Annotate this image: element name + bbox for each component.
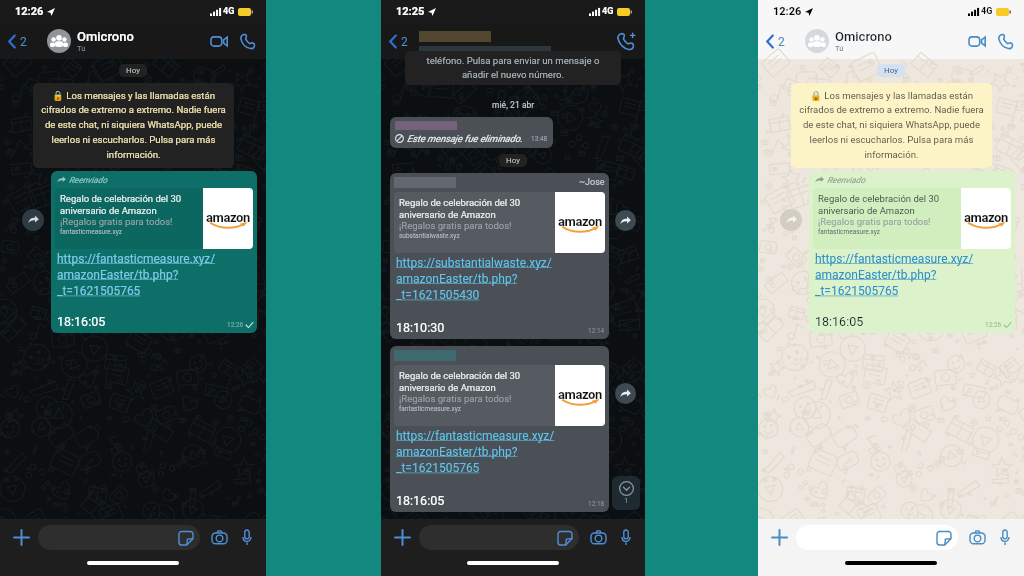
staticText: Tú xyxy=(77,44,86,53)
staticText: 18:10:30 xyxy=(396,320,445,335)
staticText: Omicrono xyxy=(835,29,892,44)
button[interactable]: Back xyxy=(385,34,411,49)
staticText: fantasticmeasure.xyz xyxy=(399,405,461,413)
staticText: 1 xyxy=(624,496,629,505)
staticText: Reenviado xyxy=(827,175,866,185)
button[interactable]: Reenviado xyxy=(51,171,257,333)
staticText: 13:48 xyxy=(531,135,548,143)
staticText: https://fantasticmeasure.xyz/ amazonEast… xyxy=(396,429,555,475)
button[interactable]: Voice message xyxy=(615,526,637,548)
staticText: 12:14 xyxy=(588,327,605,335)
button[interactable]: Message xyxy=(38,525,200,550)
staticText: amazon xyxy=(558,214,602,229)
staticText: 18:16:05 xyxy=(396,493,445,508)
staticText: Regalo de celebración del 30 aniversario… xyxy=(818,193,940,216)
staticText: ¡Regalos gratis para todos! xyxy=(399,220,512,231)
staticText: mié, 21 abr xyxy=(492,100,535,110)
staticText: Regalo de celebración del 30 aniversario… xyxy=(399,370,521,393)
button[interactable]: Attach xyxy=(389,524,415,550)
button[interactable]: Message xyxy=(796,525,958,550)
button[interactable]: Back xyxy=(4,34,30,49)
staticText: https://fantasticmeasure.xyz/ amazonEast… xyxy=(815,252,974,298)
button[interactable]: ~Jose xyxy=(390,173,609,339)
button[interactable]: Message xyxy=(419,525,579,550)
button[interactable]: Scroll to bottom xyxy=(612,476,640,510)
button[interactable]: Forward xyxy=(615,210,636,231)
staticText: 2 xyxy=(778,35,785,49)
staticText: 🔒 Los mensajes y las llamadas están cifr… xyxy=(797,90,986,161)
staticText: ¡Regalos gratis para todos! xyxy=(399,393,512,404)
staticText: fantasticmeasure.xyz xyxy=(818,228,880,236)
button[interactable]: Forward xyxy=(615,383,636,404)
button[interactable]: Forward xyxy=(22,209,44,231)
staticText: 18:16:05 xyxy=(815,314,864,329)
staticText: Regalo de celebración del 30 aniversario… xyxy=(399,197,521,220)
staticText: 🔒 Los mensajes y las llamadas están cifr… xyxy=(39,90,228,161)
staticText: ¡Regalos gratis para todos! xyxy=(60,216,173,227)
staticText: amazon xyxy=(964,210,1008,225)
button[interactable]: Attach xyxy=(8,524,34,550)
staticText: ~Jose xyxy=(579,177,605,188)
button[interactable]: Video call xyxy=(206,28,232,54)
staticText: teléfono. Pulsa para enviar un mensaje o… xyxy=(412,55,614,81)
button[interactable]: Voice call xyxy=(234,28,260,54)
staticText: amazon xyxy=(206,210,250,225)
button[interactable]: Voice call xyxy=(992,28,1018,54)
staticText: 12:25 xyxy=(396,5,425,18)
staticText: Este mensaje fue eliminado. xyxy=(407,133,523,144)
staticText: https://substantialwaste.xyz/ amazonEast… xyxy=(396,256,552,302)
staticText: Omicrono xyxy=(77,29,134,44)
staticText: 12:26 xyxy=(15,5,44,18)
button[interactable]: Reenviado xyxy=(809,171,1015,333)
button[interactable]: Camera xyxy=(966,526,988,548)
button[interactable]: Video call xyxy=(964,28,990,54)
staticText: ¡Regalos gratis para todos! xyxy=(818,216,931,227)
staticText: Tú xyxy=(835,44,844,53)
button[interactable]: 🔒 Los mensajes y las llamadas están cifr… xyxy=(33,83,234,168)
staticText: 12:26 xyxy=(773,5,802,18)
staticText: Hoy xyxy=(506,156,520,165)
button[interactable]: Add call xyxy=(611,27,639,55)
staticText: 4G xyxy=(981,6,993,17)
staticText: 12:26 xyxy=(985,321,1002,329)
staticText: https://fantasticmeasure.xyz/ amazonEast… xyxy=(57,252,216,298)
staticText: 12:26 xyxy=(227,321,244,329)
staticText: amazon xyxy=(558,387,602,402)
staticText: 4G xyxy=(602,6,614,17)
staticText: 12:18 xyxy=(588,500,605,508)
button[interactable]: Regalo de celebración del 30 aniversario… xyxy=(390,346,609,512)
button[interactable]: Attach xyxy=(766,524,792,550)
staticText: 2 xyxy=(401,35,408,49)
staticText: fantasticmeasure.xyz xyxy=(60,228,122,236)
button[interactable]: Forward xyxy=(780,209,802,231)
staticText: Reenviado xyxy=(69,175,108,185)
staticText: Hoy xyxy=(884,66,898,75)
button[interactable]: Voice message xyxy=(236,526,258,548)
button[interactable]: Camera xyxy=(208,526,230,548)
button[interactable]: Este mensaje fue eliminado. xyxy=(390,117,553,148)
button[interactable]: Camera xyxy=(587,526,609,548)
button[interactable]: Voice message xyxy=(994,526,1016,548)
staticText: 18:16:05 xyxy=(57,314,106,329)
staticText: Hoy xyxy=(126,66,140,75)
staticText: 4G xyxy=(223,6,235,17)
button[interactable]: Back xyxy=(762,34,788,49)
staticText: Regalo de celebración del 30 aniversario… xyxy=(60,193,182,216)
staticText: 2 xyxy=(20,35,27,49)
button[interactable]: 🔒 Los mensajes y las llamadas están cifr… xyxy=(791,83,992,168)
staticText: substantialwaste.xyz xyxy=(399,232,460,240)
